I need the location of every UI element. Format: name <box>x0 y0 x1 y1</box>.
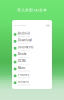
staticText: 2023-06-09 21:03 <box>18 49 30 51</box>
button[interactable]: Android <box>12 31 52 38</box>
button[interactable]: 导入外部TXT文本 <box>0 0 64 20</box>
staticText: Pictures <box>18 73 29 76</box>
button[interactable]: Books <box>12 52 52 59</box>
staticText: 2023-06-05 11:48 <box>18 77 30 79</box>
button[interactable]: tencent <box>12 79 52 86</box>
staticText: 2023-06-08 13:57 <box>18 56 30 58</box>
button[interactable]: Music <box>12 65 52 72</box>
button[interactable]: Pictures <box>12 72 52 79</box>
button[interactable]: 全选 <box>45 24 50 27</box>
staticText: Android <box>18 32 30 35</box>
button[interactable]: DCIM <box>12 59 52 65</box>
staticText: 导入外部TXT文本 <box>17 7 47 13</box>
staticText: Music <box>18 66 25 70</box>
staticText: tencent <box>18 80 29 83</box>
staticText: 2023-06-11 18:22 <box>18 35 30 37</box>
staticText: Download <box>18 38 32 42</box>
button[interactable]: Documents <box>12 45 52 52</box>
staticText: 2023-06-10 09:41 <box>18 42 30 44</box>
staticText: Documents <box>18 45 33 49</box>
staticText: Books <box>18 52 26 56</box>
staticText: /storage/emulated/0 <box>14 25 27 26</box>
staticText: 2023-06-07 08:12 <box>18 63 30 65</box>
staticText: DCIM <box>18 59 25 63</box>
staticText: 全选 <box>47 25 49 26</box>
staticText: 2023-06-04 19:25 <box>18 84 30 86</box>
button[interactable]: Download <box>12 38 52 45</box>
